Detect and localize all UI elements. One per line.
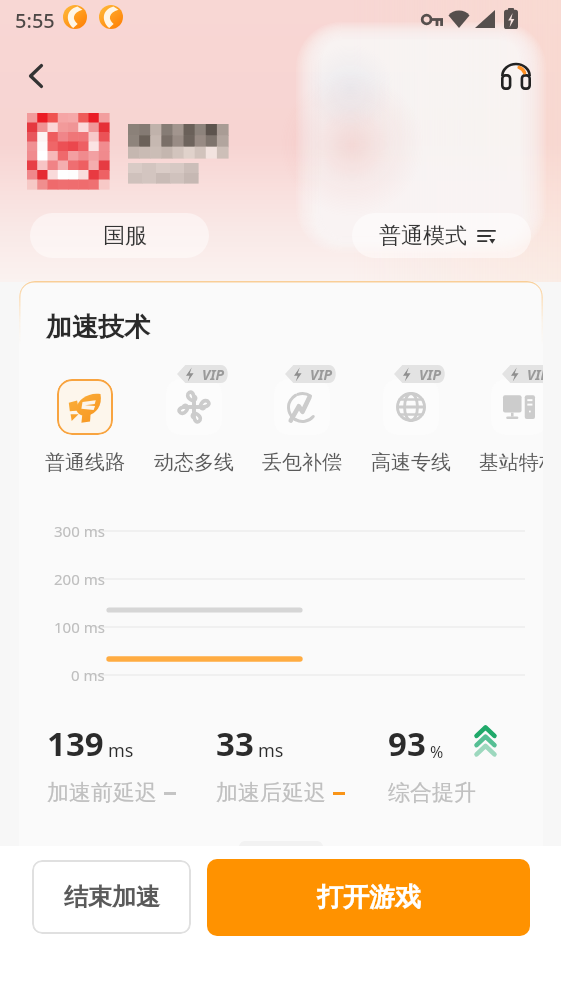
button[interactable]: 打开游戏	[207, 859, 530, 936]
staticText: VIP	[202, 365, 225, 383]
button[interactable]: 动态多线	[166, 379, 222, 435]
staticText: 国服	[103, 222, 147, 250]
staticText: 动态多线	[154, 450, 234, 475]
staticText: 丢包补偿	[262, 450, 342, 475]
button[interactable]: 结束加速	[32, 860, 191, 934]
staticText: VIP	[310, 365, 333, 383]
button[interactable]: Back	[14, 54, 58, 98]
staticText: ms	[108, 738, 134, 763]
staticText: 打开游戏	[317, 881, 421, 914]
staticText: 综合提升	[388, 779, 476, 807]
staticText: 结束加速	[64, 882, 160, 912]
staticText: 5:55	[15, 7, 55, 34]
staticText: 加速后延迟	[216, 779, 326, 807]
staticText: %	[430, 741, 444, 763]
staticText: VIP	[527, 365, 543, 383]
button[interactable]: 丢包补偿	[274, 379, 330, 435]
staticText: 加速技术	[46, 311, 150, 344]
staticText: VIP	[419, 365, 442, 383]
staticText: 139	[47, 721, 104, 766]
staticText: 加速前延迟	[47, 779, 157, 807]
staticText: 基站特权	[479, 450, 543, 475]
staticText: 普通模式	[379, 222, 467, 250]
staticText: ms	[258, 738, 284, 763]
button[interactable]: 基站特权	[491, 379, 543, 435]
button[interactable]: 普通线路	[57, 379, 113, 435]
button[interactable]: 国服	[30, 213, 209, 258]
staticText: 33	[216, 721, 254, 766]
staticText: 100 ms	[54, 617, 105, 637]
button[interactable]: Customer service	[494, 54, 538, 98]
staticText: 93	[388, 721, 426, 766]
staticText: 0 ms	[71, 665, 105, 685]
staticText: 高速专线	[371, 450, 451, 475]
staticText: 200 ms	[54, 569, 105, 589]
button[interactable]: 普通模式	[352, 213, 531, 258]
staticText: 300 ms	[54, 521, 105, 541]
staticText: 普通线路	[45, 450, 125, 475]
button[interactable]: 高速专线	[383, 379, 439, 435]
